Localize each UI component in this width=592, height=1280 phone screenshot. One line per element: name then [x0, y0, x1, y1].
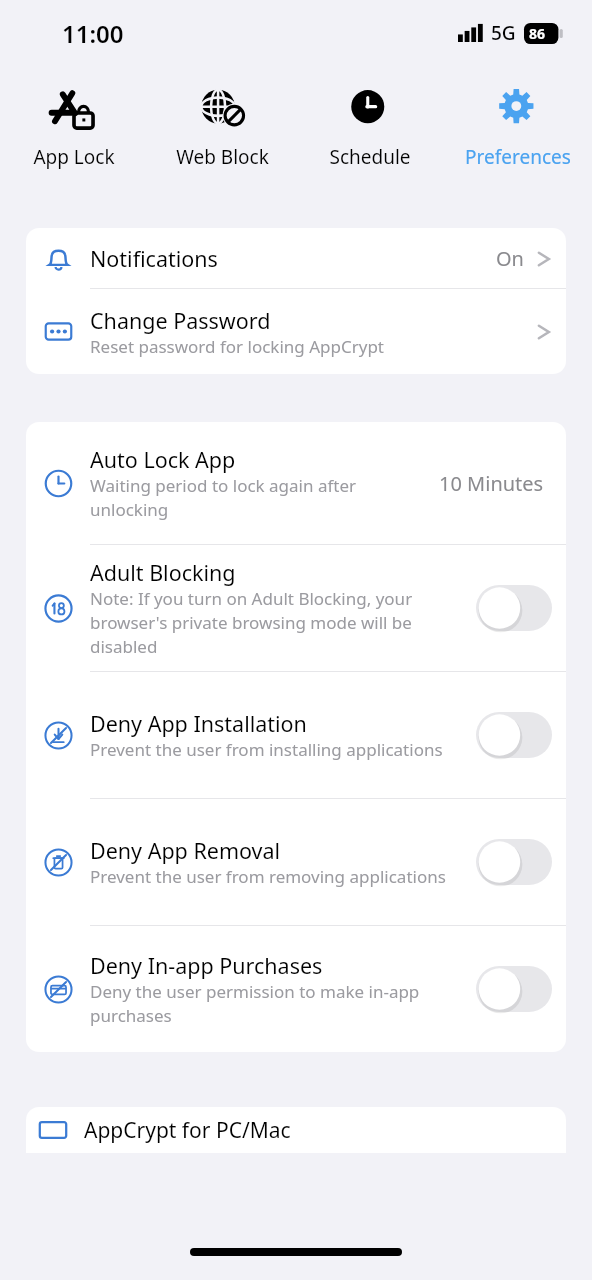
staticText: Prevent the user from installing applica…	[90, 738, 443, 761]
staticText: Schedule	[329, 144, 411, 170]
staticText: 86	[529, 24, 546, 43]
button[interactable]: Deny In-app Purchases	[26, 926, 566, 1052]
button[interactable]: Toggle	[476, 585, 552, 631]
staticText: Deny App Removal	[90, 836, 281, 865]
button[interactable]: Preferences	[444, 62, 592, 172]
staticText: 5G	[491, 20, 516, 46]
button[interactable]: Deny App Installation	[26, 672, 566, 798]
staticText: Change Password	[90, 306, 271, 335]
button[interactable]: Toggle	[476, 966, 552, 1012]
staticText: AppCrypt for PC/Mac	[84, 1116, 291, 1145]
button[interactable]: Toggle	[476, 712, 552, 758]
staticText: 10 Minutes	[439, 470, 544, 497]
button[interactable]: Notifications	[26, 228, 566, 288]
staticText: Deny the user permission to make in-app …	[90, 980, 468, 1027]
staticText: Prevent the user from removing applicati…	[90, 865, 446, 888]
staticText: 11:00	[62, 17, 124, 50]
button[interactable]: Adult Blocking	[26, 545, 566, 671]
staticText: On	[496, 245, 524, 272]
button[interactable]: Toggle	[476, 839, 552, 885]
button[interactable]: Schedule	[296, 62, 444, 172]
staticText: Adult Blocking	[90, 558, 236, 587]
button[interactable]: AppCrypt for PC/Mac	[26, 1107, 566, 1153]
button[interactable]: Auto Lock App	[26, 422, 566, 544]
staticText: Waiting period to lock again after unloc…	[90, 474, 431, 521]
staticText: Reset password for locking AppCrypt	[90, 335, 384, 358]
button[interactable]: Web Block	[148, 62, 296, 172]
button[interactable]: Deny App Removal	[26, 799, 566, 925]
staticText: Notifications	[90, 244, 218, 273]
staticText: Web Block	[176, 144, 269, 170]
staticText: Auto Lock App	[90, 445, 236, 474]
staticText: Deny App Installation	[90, 709, 307, 738]
staticText: Deny In-app Purchases	[90, 951, 323, 980]
button[interactable]: Change Password	[26, 289, 566, 374]
staticText: Note: If you turn on Adult Blocking, you…	[90, 587, 468, 658]
staticText: Preferences	[465, 144, 571, 170]
button[interactable]: App Lock	[0, 62, 148, 172]
staticText: App Lock	[33, 144, 115, 170]
